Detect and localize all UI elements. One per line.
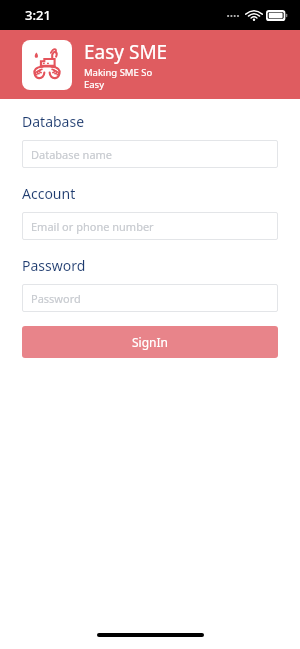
staticText: SignIn [132,334,168,350]
staticText: Database [22,112,85,131]
staticText: Email or phone number [31,219,154,234]
button[interactable]: Password [22,284,278,312]
button[interactable]: SignIn [22,326,278,358]
other: Home indicator [97,633,204,637]
staticText: Password [22,256,86,275]
button[interactable]: Email or phone number [22,212,278,240]
staticText: Database name [31,147,113,162]
staticText: Making SME So Easy [84,66,153,91]
button[interactable]: Database name [22,140,278,168]
staticText: 3:21 [25,6,51,24]
staticText: Account [22,184,76,203]
staticText: Password [31,291,81,306]
staticText: Easy SME [84,39,168,65]
